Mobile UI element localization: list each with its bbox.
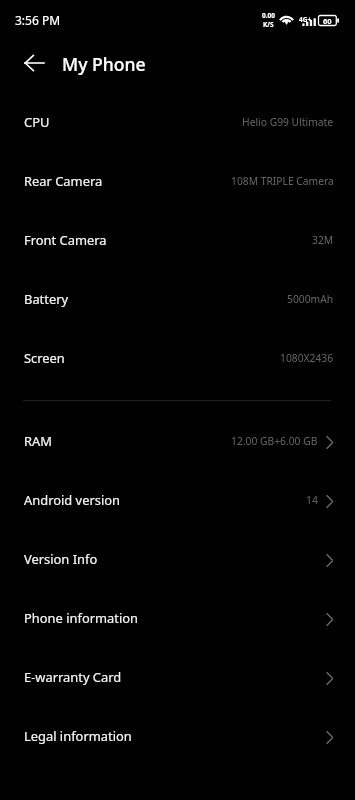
button[interactable]: E-warranty Card (0, 647, 355, 706)
button[interactable]: Screen (0, 328, 355, 387)
staticText: Rear Camera (24, 172, 103, 190)
staticText: K/S (263, 20, 274, 29)
button[interactable]: Front Camera (0, 210, 355, 269)
staticText: 1080X2436 (280, 351, 334, 365)
staticText: 108M TRIPLE Camera (231, 174, 334, 188)
button[interactable]: Legal information (0, 706, 355, 765)
staticText: 3:56 PM (15, 12, 61, 28)
staticText: Version Info (24, 550, 98, 568)
staticText: CPU (24, 113, 50, 131)
staticText: Android version (24, 491, 121, 509)
button[interactable]: Version Info (0, 529, 355, 588)
staticText: Helio G99 Ultimate (242, 115, 334, 129)
staticText: 0.00 (262, 11, 275, 20)
button[interactable]: RAM (0, 411, 355, 470)
staticText: Screen (24, 349, 65, 367)
button[interactable]: Phone information (0, 588, 355, 647)
staticText: 5000mAh (287, 292, 334, 306)
staticText: 4G+ (299, 15, 312, 24)
staticText: 60 (323, 16, 332, 26)
staticText: My Phone (62, 52, 146, 76)
staticText: Phone information (24, 609, 139, 627)
button[interactable]: CPU (0, 92, 355, 151)
staticText: 14 (306, 493, 318, 507)
staticText: Front Camera (24, 231, 107, 249)
staticText: 12.00 GB+6.00 GB (231, 434, 318, 448)
staticText: E-warranty Card (24, 668, 122, 686)
staticText: Battery (24, 290, 69, 308)
staticText: RAM (24, 432, 52, 450)
button[interactable]: Rear Camera (0, 151, 355, 210)
staticText: 32M (312, 233, 334, 247)
button[interactable]: Android version (0, 470, 355, 529)
button[interactable]: Back (14, 44, 54, 84)
staticText: Legal information (24, 727, 132, 745)
button[interactable]: Battery (0, 269, 355, 328)
